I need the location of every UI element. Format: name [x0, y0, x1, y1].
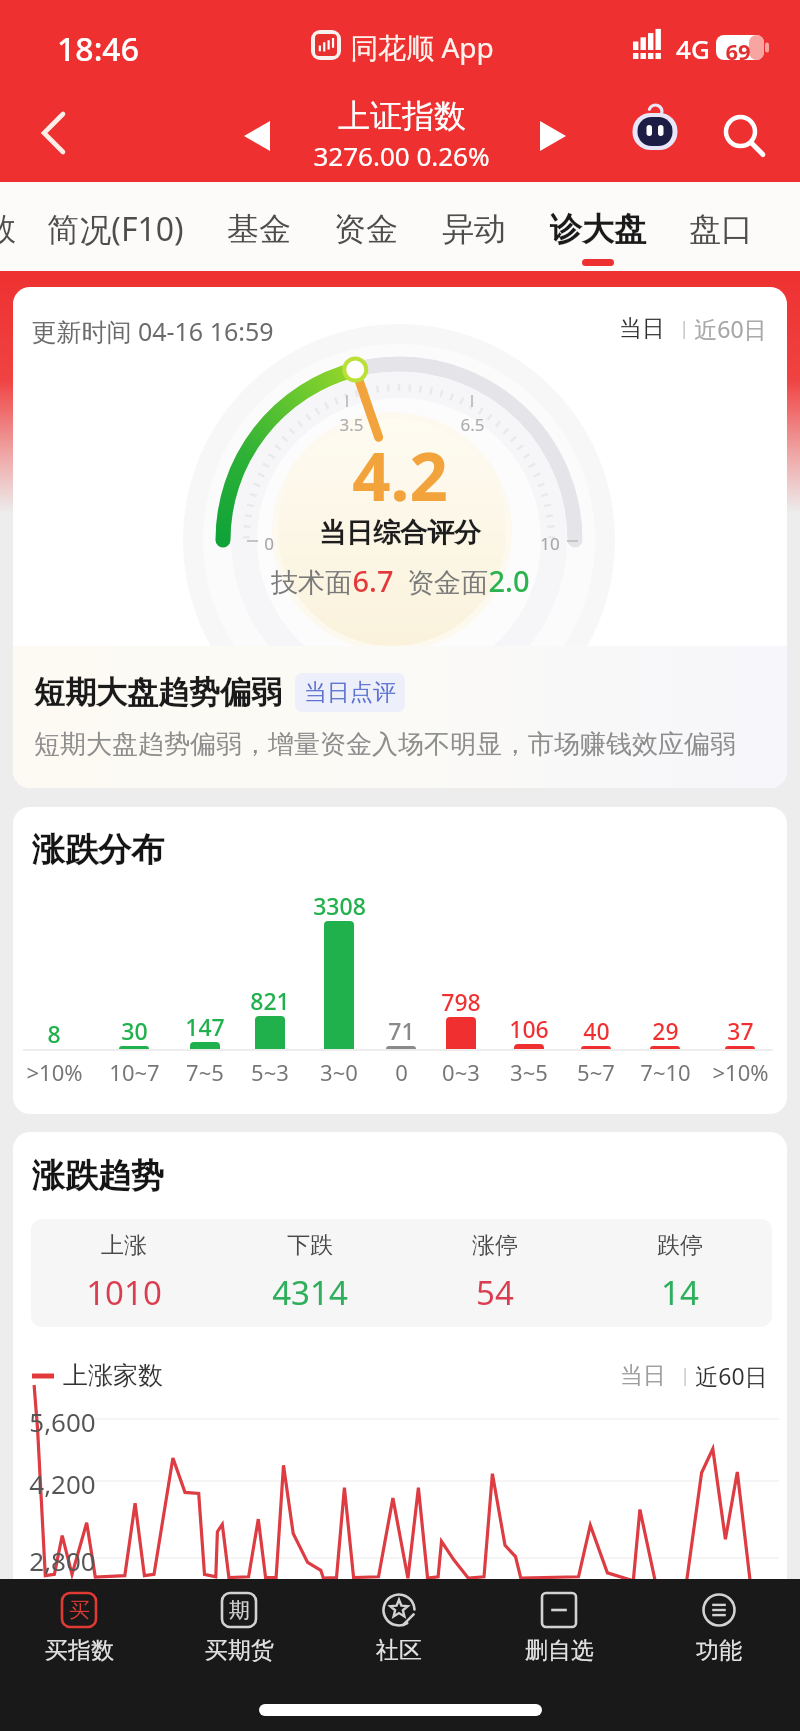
staticText: 4.2 — [352, 429, 448, 520]
staticText: 盘口 — [689, 209, 753, 249]
staticText: | — [665, 316, 694, 341]
staticText: 7~10 — [640, 1057, 691, 1087]
staticText: 短期大盘趋势偏弱 — [34, 673, 282, 712]
button[interactable]: 跌停 — [587, 1231, 772, 1315]
staticText: 同花顺 App — [350, 28, 494, 66]
staticText: 821 — [250, 985, 290, 1016]
staticText: 期 — [229, 1597, 250, 1623]
staticText: 涨跌分布 — [32, 829, 164, 871]
staticText: 29 — [652, 1015, 679, 1046]
staticText: 短期大盘趋势偏弱，增量资金入场不明显，市场赚钱效应偏弱 — [34, 728, 736, 761]
staticText: 3308 — [313, 890, 366, 921]
staticText: 上涨家数 — [63, 1360, 163, 1391]
staticText: 当日综合评分 — [319, 516, 481, 550]
staticText: >10% — [26, 1057, 83, 1087]
staticText: 8 — [47, 1018, 61, 1049]
staticText: 4314 — [272, 1270, 348, 1315]
staticText: 71 — [388, 1015, 415, 1046]
staticText: 买 — [69, 1597, 90, 1623]
staticText: 涨跌趋势 — [32, 1155, 164, 1197]
staticText: 30 — [121, 1015, 148, 1046]
staticText: 3.5 — [339, 413, 364, 436]
staticText: 简况(F10) — [47, 207, 184, 251]
button[interactable]: Next stock — [522, 105, 584, 167]
button[interactable]: 诊大盘 — [529, 182, 667, 271]
staticText: 社区 — [376, 1636, 422, 1665]
staticText: 当日点评 — [304, 678, 396, 707]
staticText: 买期货 — [205, 1636, 274, 1665]
staticText: 3~0 — [320, 1057, 358, 1087]
staticText: 798 — [441, 986, 481, 1017]
staticText: 6.5 — [460, 413, 485, 436]
button[interactable]: Back — [10, 99, 96, 173]
staticText: 异动 — [442, 209, 506, 249]
button[interactable]: 资金 — [314, 182, 418, 271]
staticText: 功能 — [696, 1636, 742, 1665]
button[interactable]: 买 — [4, 1593, 154, 1665]
staticText: 4,200 — [29, 1466, 96, 1501]
staticText: 147 — [185, 1011, 225, 1042]
staticText: 0 — [395, 1057, 408, 1087]
staticText: 更新时间 04-16 16:59 — [31, 314, 274, 348]
staticText: >10% — [712, 1057, 769, 1087]
staticText: 2.0 — [488, 561, 530, 600]
staticText: 3276.00 0.26% — [313, 138, 490, 173]
staticText: 下跌 — [287, 1231, 333, 1260]
staticText: 6.7 — [352, 561, 394, 600]
staticText: 诊大盘 — [550, 209, 646, 249]
staticText: 40 — [583, 1015, 610, 1046]
staticText: 7~5 — [186, 1057, 224, 1087]
button[interactable]: 期 — [164, 1593, 314, 1665]
button[interactable]: AI assistant — [622, 100, 688, 172]
button[interactable]: 功能 — [644, 1593, 794, 1665]
staticText: 数 — [0, 209, 16, 249]
button[interactable]: 盘口 — [669, 182, 773, 271]
staticText: 删自选 — [525, 1636, 594, 1665]
staticText: 上证指数 — [338, 96, 466, 136]
staticText: 4G — [676, 31, 710, 66]
staticText: 14 — [661, 1270, 699, 1315]
staticText: 0~3 — [442, 1057, 480, 1087]
staticText: 5~3 — [251, 1057, 289, 1087]
button[interactable]: Search — [708, 100, 780, 172]
button[interactable]: 数 — [0, 182, 35, 271]
button[interactable]: 当日 — [619, 314, 665, 343]
button[interactable]: 简况(F10) — [0, 182, 252, 271]
staticText: 18:46 — [57, 27, 139, 71]
staticText: 资金 — [334, 209, 398, 249]
staticText: 买指数 — [45, 1636, 114, 1665]
staticText: 106 — [509, 1013, 549, 1044]
staticText: 基金 — [227, 209, 291, 249]
button[interactable]: 异动 — [422, 182, 526, 271]
button[interactable]: 当日 — [620, 1361, 666, 1390]
button[interactable]: 基金 — [207, 182, 311, 271]
staticText: | — [666, 1363, 695, 1388]
staticText: 69 — [725, 36, 751, 66]
button[interactable]: 上涨 — [31, 1231, 217, 1315]
staticText: 技术面 — [271, 566, 352, 600]
staticText: 5~7 — [577, 1057, 615, 1087]
staticText: 54 — [476, 1270, 514, 1315]
staticText: 资金面 — [407, 566, 488, 600]
button[interactable]: Previous stock — [226, 105, 288, 167]
staticText: 10 — [540, 532, 560, 555]
staticText: 0 — [264, 532, 274, 555]
button[interactable]: 近60日 — [694, 313, 767, 344]
button[interactable]: 下跌 — [217, 1231, 402, 1315]
staticText: 5,600 — [29, 1404, 96, 1439]
staticText: 跌停 — [657, 1231, 703, 1260]
button[interactable]: 近60日 — [695, 1360, 768, 1391]
staticText: 10~7 — [109, 1057, 160, 1087]
button[interactable]: 社区 — [324, 1593, 474, 1665]
staticText: 37 — [727, 1015, 754, 1046]
staticText: 涨停 — [472, 1231, 518, 1260]
staticText: 3~5 — [510, 1057, 548, 1087]
staticText: 上涨 — [101, 1231, 147, 1260]
staticText: 2,800 — [29, 1543, 96, 1578]
staticText: 1010 — [86, 1270, 162, 1315]
button[interactable]: 删自选 — [484, 1593, 634, 1665]
button[interactable]: 涨停 — [402, 1231, 587, 1315]
